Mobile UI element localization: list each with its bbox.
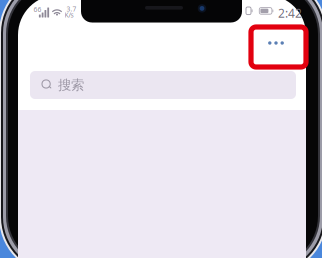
staticText: 3.7 [66, 5, 76, 13]
staticText: 2:42 [278, 5, 302, 21]
staticText: K/s [64, 10, 73, 19]
button[interactable]: 搜索 [30, 71, 296, 99]
staticText: 66 [33, 5, 41, 14]
button[interactable]: More [252, 24, 300, 62]
staticText: 搜索 [58, 77, 84, 93]
